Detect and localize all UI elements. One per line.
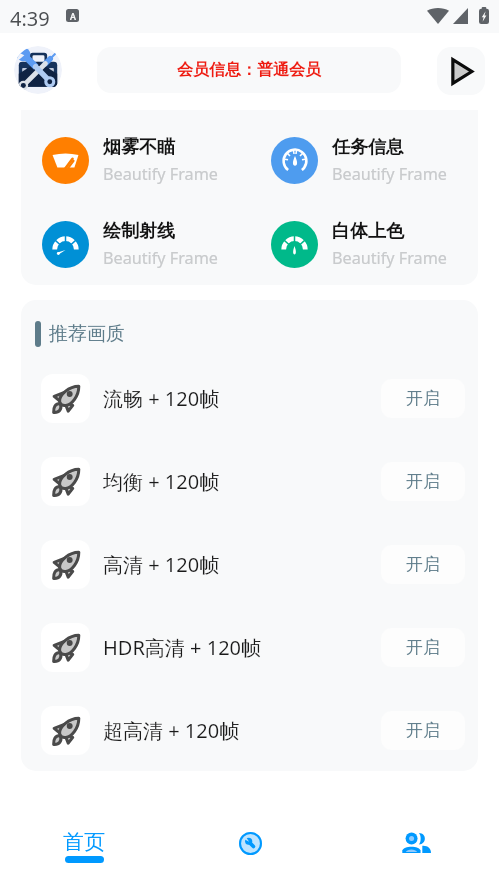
button[interactable]: 任务信息 bbox=[250, 136, 478, 184]
button[interactable]: 开启 bbox=[381, 711, 465, 750]
staticText: 超高清 + 120帧 bbox=[103, 717, 240, 744]
button[interactable]: 超高清 + 120帧 bbox=[21, 689, 478, 771]
staticText: 开启 bbox=[406, 554, 440, 575]
staticText: 4:39 bbox=[10, 5, 50, 32]
staticText: 会员信息：普通会员 bbox=[177, 60, 321, 80]
button[interactable]: 流畅 + 120帧 bbox=[21, 357, 478, 440]
button[interactable]: Tools bbox=[167, 798, 333, 888]
button[interactable]: Friends bbox=[333, 798, 499, 888]
button[interactable]: 白体上色 bbox=[250, 220, 478, 268]
button[interactable]: 绘制射线 bbox=[21, 220, 250, 268]
staticText: 开启 bbox=[406, 637, 440, 658]
staticText: 推荐画质 bbox=[49, 322, 125, 346]
button[interactable]: 开启 bbox=[381, 545, 465, 584]
button[interactable]: 均衡 + 120帧 bbox=[21, 440, 478, 523]
staticText: Beautify Frame bbox=[332, 163, 447, 184]
staticText: 开启 bbox=[406, 388, 440, 409]
staticText: 烟雾不瞄 bbox=[103, 136, 175, 159]
button[interactable]: 开启 bbox=[381, 628, 465, 667]
button[interactable]: HDR高清 + 120帧 bbox=[21, 606, 478, 689]
staticText: HDR高清 + 120帧 bbox=[103, 634, 262, 661]
staticText: 流畅 + 120帧 bbox=[103, 385, 220, 412]
staticText: Beautify Frame bbox=[332, 247, 447, 268]
staticText: 高清 + 120帧 bbox=[103, 551, 220, 578]
staticText: Beautify Frame bbox=[103, 163, 218, 184]
button[interactable]: 开启 bbox=[381, 462, 465, 501]
button[interactable]: 高清 + 120帧 bbox=[21, 523, 478, 606]
staticText: 首页 bbox=[63, 829, 105, 855]
button[interactable]: 会员信息：普通会员 bbox=[97, 47, 401, 93]
staticText: A bbox=[70, 10, 76, 22]
staticText: 均衡 + 120帧 bbox=[103, 468, 220, 495]
button[interactable]: Start bbox=[437, 47, 485, 95]
staticText: Beautify Frame bbox=[103, 247, 218, 268]
staticText: 任务信息 bbox=[332, 136, 404, 159]
button[interactable]: App logo bbox=[14, 46, 62, 94]
staticText: 绘制射线 bbox=[103, 220, 175, 243]
staticText: 白体上色 bbox=[332, 220, 404, 243]
button[interactable]: 开启 bbox=[381, 379, 465, 418]
staticText: 开启 bbox=[406, 720, 440, 741]
button[interactable]: 烟雾不瞄 bbox=[21, 136, 250, 184]
button[interactable]: 首页 bbox=[0, 798, 167, 888]
staticText: 开启 bbox=[406, 471, 440, 492]
